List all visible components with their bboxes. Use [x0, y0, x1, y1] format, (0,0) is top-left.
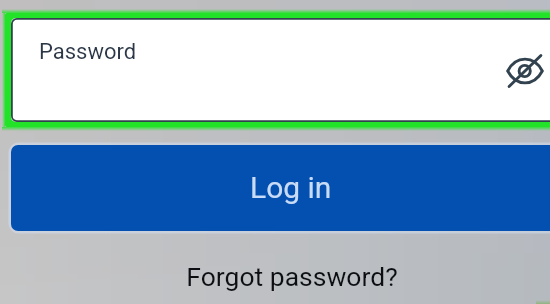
- staticText: Log in: [250, 170, 332, 205]
- staticText: Password: [39, 39, 137, 65]
- button[interactable]: Show password: [498, 44, 550, 98]
- button[interactable]: Log in: [11, 145, 550, 231]
- button[interactable]: Forgot password?: [171, 256, 412, 296]
- staticText: Forgot password?: [186, 261, 398, 292]
- button[interactable]: Password: [5, 13, 550, 127]
